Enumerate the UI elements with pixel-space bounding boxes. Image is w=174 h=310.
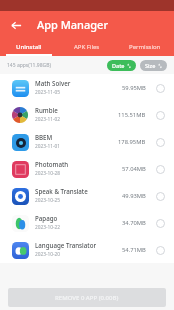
staticText: 2023-10-20 — [35, 251, 61, 258]
button[interactable]: Uninstall — [0, 38, 58, 56]
staticText: 2023-11-01 — [35, 143, 61, 150]
staticText: Papago — [35, 214, 58, 222]
button[interactable]: APK Files — [58, 38, 116, 56]
staticText: 2023-10-22 — [35, 224, 61, 231]
button[interactable]: Speak & Translate — [0, 182, 174, 209]
staticText: REMOVE 0 APP (0.00B) — [55, 294, 119, 302]
staticText: Math Solver — [35, 79, 71, 87]
staticText: 2023-10-28 — [35, 170, 61, 177]
staticText: 2023-10-25 — [35, 197, 61, 204]
staticText: Size — [145, 62, 156, 69]
staticText: Date — [112, 62, 125, 69]
staticText: 59.95MB — [122, 84, 146, 92]
staticText: 54.71MB — [122, 246, 146, 254]
button[interactable]: Size — [140, 60, 167, 71]
button[interactable]: Select BBEM — [153, 135, 167, 149]
button[interactable]: Language Translator — [0, 236, 174, 263]
staticText: 2023-11-05 — [35, 89, 61, 96]
button[interactable]: REMOVE 0 APP (0.00B) — [8, 288, 166, 307]
button[interactable]: Select Language Translator — [153, 243, 167, 257]
button[interactable]: Math Solver — [0, 74, 174, 101]
staticText: 49.93MB — [122, 192, 146, 200]
staticText: Photomath — [35, 160, 69, 168]
staticText: 2023-11-02 — [35, 116, 61, 123]
button[interactable]: Papago — [0, 209, 174, 236]
button[interactable]: BBEM — [0, 128, 174, 155]
button[interactable]: Date — [107, 60, 136, 71]
staticText: Uninstall — [16, 43, 42, 51]
staticText: 145 apps(11.98GB) — [7, 62, 51, 69]
staticText: 178.95MB — [118, 138, 146, 146]
button[interactable]: Select Speak & Translate — [153, 189, 167, 203]
staticText: 57.04MB — [122, 165, 146, 173]
button[interactable]: Back — [5, 14, 27, 36]
button[interactable]: Select Papago — [153, 216, 167, 230]
staticText: 115.51MB — [118, 111, 146, 119]
button[interactable]: Select Photomath — [153, 162, 167, 176]
button[interactable]: Rumble — [0, 101, 174, 128]
staticText: App Manager — [37, 17, 109, 32]
staticText: 34.70MB — [122, 219, 146, 227]
staticText: BBEM — [35, 133, 53, 141]
staticText: Language Translator — [35, 241, 97, 249]
button[interactable]: Select Math Solver — [153, 81, 167, 95]
staticText: APK Files — [74, 43, 100, 51]
staticText: Rumble — [35, 106, 58, 114]
staticText: Permission — [129, 43, 161, 51]
staticText: Speak & Translate — [35, 187, 88, 195]
button[interactable]: Permission — [116, 38, 174, 56]
button[interactable]: Select Rumble — [153, 108, 167, 122]
button[interactable]: Photomath — [0, 155, 174, 182]
